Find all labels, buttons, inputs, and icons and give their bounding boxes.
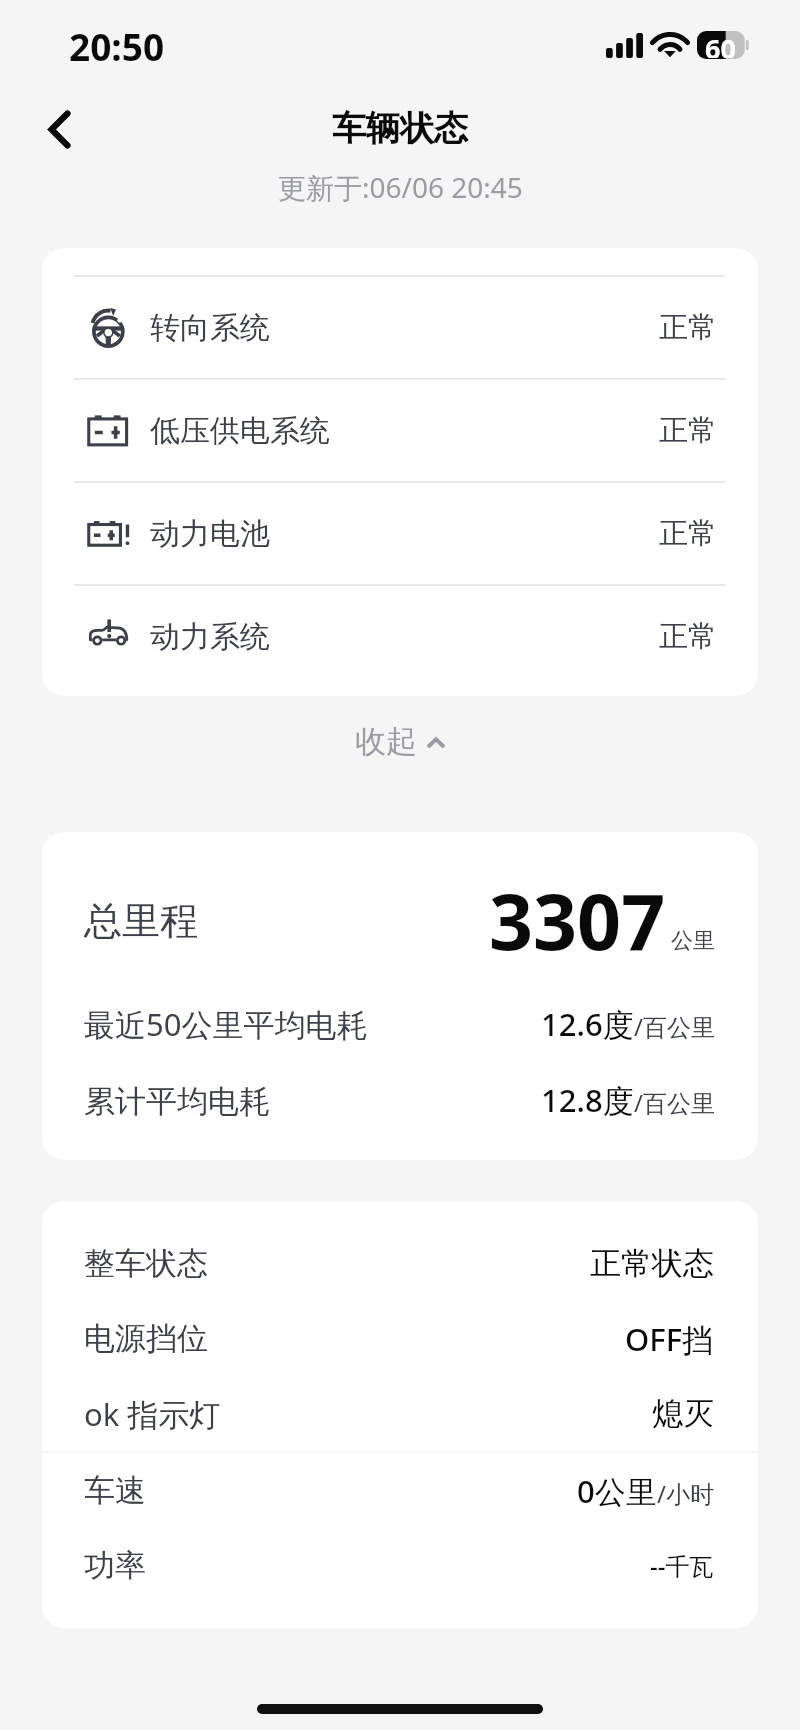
staticText: 60 [705,30,736,58]
staticText: 功率 [84,1546,146,1585]
staticText: /百公里 [634,1086,715,1119]
button[interactable]: 电源挡位 [84,1301,714,1376]
staticText: 更新于:06/06 20:45 [278,168,523,206]
button[interactable]: 动力系统 [42,584,758,687]
staticText: 最近50公里平均电耗 [84,1003,368,1045]
staticText: OFF挡 [625,1318,714,1360]
staticText: 动力电池 [150,515,270,553]
staticText: 12.8度 [541,1079,634,1121]
staticText: 3307 [489,868,666,973]
staticText: 总里程 [84,897,198,945]
staticText: 公里 [671,927,715,955]
staticText: 0公里 [577,1470,657,1512]
staticText: /百公里 [634,1010,715,1043]
staticText: --千瓦 [650,1549,714,1582]
staticText: 熄灭 [652,1394,714,1433]
button[interactable]: Back [34,104,84,154]
staticText: 低压供电系统 [150,412,330,450]
staticText: 收起 [355,722,417,761]
button[interactable]: 转向系统 [42,275,758,378]
staticText: 正常 [659,618,717,655]
button[interactable]: ok 指示灯 [84,1376,714,1451]
staticText: 累计平均电耗 [84,1082,270,1121]
staticText: 正常 [659,412,717,449]
staticText: 20:50 [69,21,165,71]
staticText: 转向系统 [150,309,270,347]
staticText: 电源挡位 [84,1319,208,1358]
button[interactable]: 收起 [0,718,800,764]
button[interactable]: 低压供电系统 [42,378,758,481]
staticText: 整车状态 [84,1244,208,1283]
staticText: ok 指示灯 [84,1393,221,1435]
button[interactable]: 功率 [84,1528,714,1603]
staticText: 正常 [659,309,717,346]
button[interactable]: 整车状态 [84,1226,714,1301]
staticText: 车辆状态 [332,107,468,150]
staticText: 车速 [84,1471,146,1510]
staticText: 正常 [659,515,717,552]
staticText: 正常状态 [590,1244,714,1283]
button[interactable]: 动力电池 [42,481,758,584]
staticText: 动力系统 [150,618,270,656]
staticText: 12.6度 [541,1003,634,1045]
button[interactable]: 车速 [84,1453,714,1528]
staticText: /小时 [657,1477,714,1510]
